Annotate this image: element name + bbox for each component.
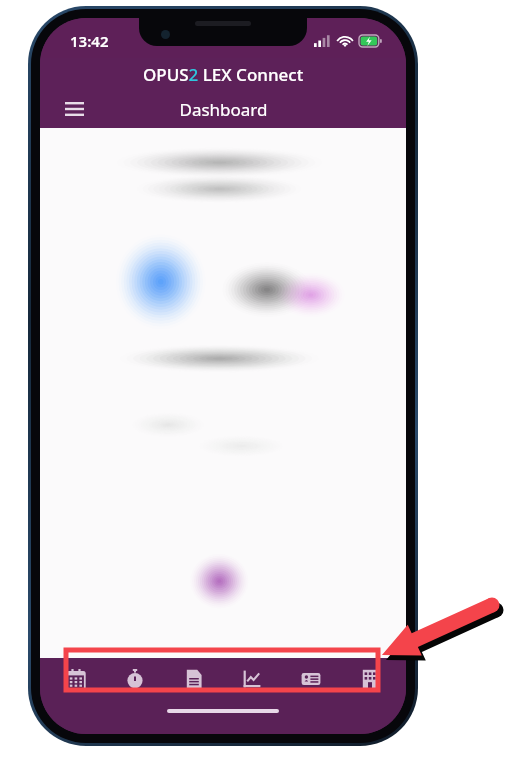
staticText: OPUS2 LEX Connect [143, 63, 304, 86]
button[interactable]: Contacts [288, 658, 334, 700]
button[interactable]: Reports [229, 658, 275, 700]
button[interactable]: Open navigation menu [54, 90, 94, 128]
staticText: Dashboard [179, 98, 268, 121]
button[interactable]: Documents [171, 658, 217, 700]
staticText: 13:42 [70, 31, 109, 51]
button[interactable]: Calendar [53, 658, 99, 700]
button[interactable]: Offices [347, 658, 393, 700]
button[interactable]: Time recording [112, 658, 158, 700]
